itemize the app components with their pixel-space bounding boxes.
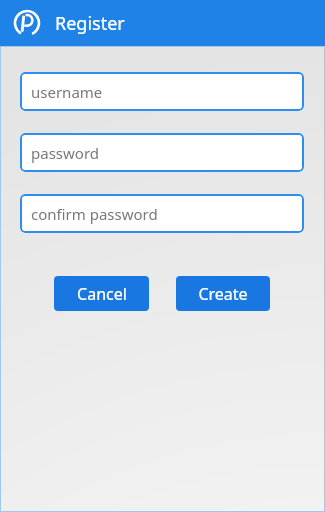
button[interactable]: confirm password bbox=[20, 194, 304, 233]
staticText: Create bbox=[198, 283, 248, 305]
staticText: Cancel bbox=[77, 283, 127, 305]
staticText: confirm password bbox=[31, 204, 158, 224]
button[interactable]: username bbox=[20, 72, 304, 111]
staticText: username bbox=[31, 82, 103, 102]
other: App logo bbox=[12, 8, 42, 38]
button[interactable]: Create bbox=[176, 276, 270, 311]
staticText: password bbox=[31, 143, 99, 163]
button[interactable]: password bbox=[20, 133, 304, 172]
staticText: Register bbox=[55, 11, 125, 36]
button[interactable]: Cancel bbox=[54, 276, 149, 311]
